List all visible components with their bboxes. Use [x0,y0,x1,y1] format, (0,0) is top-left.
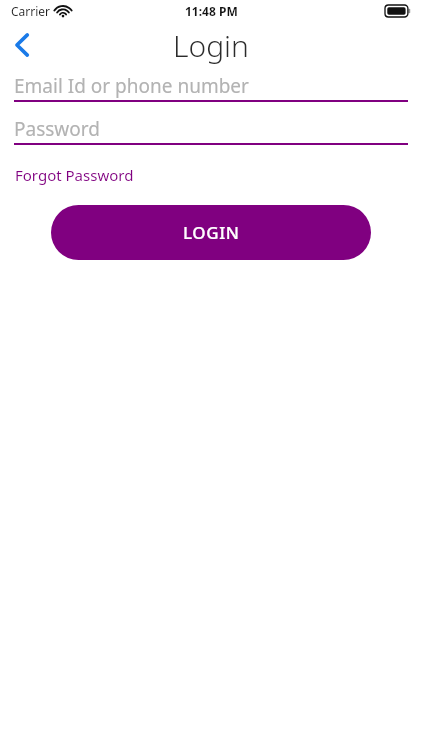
button[interactable]: Forgot Password [14,162,135,188]
staticText: Login [173,25,249,66]
button[interactable]: LOGIN [51,205,371,260]
button[interactable]: Password [14,115,408,145]
button[interactable]: Back [0,23,44,67]
staticText: Carrier [11,3,51,19]
staticText: LOGIN [183,221,240,244]
button[interactable]: Email Id or phone number [14,72,408,102]
staticText: Email Id or phone number [14,73,249,99]
staticText: Password [14,116,100,142]
staticText: Forgot Password [15,165,134,185]
staticText: 11:48 PM [185,3,238,19]
